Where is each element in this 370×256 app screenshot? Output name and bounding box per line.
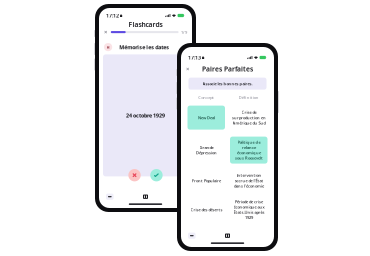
staticText: Grande Dépression [196,145,217,155]
staticText: Définition [239,95,259,100]
staticText: Mémorise les dates [119,44,169,51]
button[interactable]: Minimise [106,194,114,200]
staticText: Paires Parfaites [202,65,253,73]
button[interactable]: 24 octobre 1929 [103,54,188,176]
button[interactable]: Correct [150,169,163,181]
staticText: New Deal [198,115,215,120]
button[interactable]: Study mode [225,233,230,238]
button[interactable]: Study mode [143,194,148,199]
staticText: Flashcards [128,20,162,29]
staticText: Front Populaire [192,178,221,183]
staticText: 1/9 [181,29,187,35]
staticText: 17:13 [188,54,201,61]
button[interactable]: Close [186,67,189,71]
staticText: Associe les bonnes paires. [202,81,252,86]
staticText: Période de crise économique aux États-Un… [233,199,264,220]
button[interactable]: Intervention accrue de l'État dans l'éco… [230,170,267,192]
button[interactable]: Minimise [188,233,196,239]
button[interactable]: Période de crise économique aux États-Un… [230,196,267,224]
staticText: Crise des déserts [190,207,222,212]
button[interactable]: Close [104,30,107,34]
button[interactable]: Grande Dépression [187,137,225,164]
staticText: Concept [198,95,214,100]
button[interactable]: Crise de surproduction en Amérique du Su… [230,106,267,130]
staticText: Politique de relance économique sous Roo… [235,139,263,161]
button[interactable]: Incorrect [128,169,141,181]
staticText: 17:12 [106,12,119,19]
staticText: 24 octobre 1929 [126,112,165,119]
staticText: H [107,44,110,50]
button[interactable]: Crise des déserts [187,196,225,224]
button[interactable]: Front Populaire [187,170,225,192]
staticText: Crise de surproduction en Amérique du Su… [232,110,266,125]
button[interactable]: Politique de relance économique sous Roo… [230,137,267,164]
staticText: Intervention accrue de l'État dans l'éco… [234,173,264,188]
button[interactable]: New Deal [187,106,225,130]
